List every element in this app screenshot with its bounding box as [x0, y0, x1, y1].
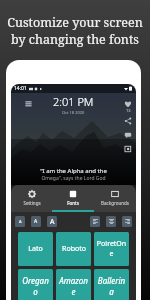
staticText: Omega", says the Lord God — [41, 175, 106, 182]
button[interactable]: Align center — [106, 216, 116, 227]
button[interactable]: Fonts — [52, 185, 94, 212]
staticText: Fonts — [67, 200, 79, 206]
staticText: Settings — [23, 200, 41, 206]
staticText: Oct 18 2020 — [62, 110, 85, 115]
staticText: Lato — [28, 244, 43, 254]
staticText: A — [19, 219, 22, 224]
staticText: Ballerina — [96, 275, 127, 297]
staticText: 2:01 PM — [53, 94, 94, 109]
button[interactable]: Comment — [124, 131, 132, 139]
button[interactable]: Align right — [122, 216, 132, 227]
button[interactable]: Ballerina — [94, 269, 129, 300]
staticText: Oregano — [20, 275, 51, 297]
button[interactable]: Align left — [90, 216, 100, 227]
button[interactable]: Like — [124, 100, 132, 108]
staticText: 13 — [126, 108, 131, 113]
staticText: Backgrounds — [101, 200, 129, 206]
staticText: PoiretOne — [96, 239, 127, 259]
button[interactable]: Share — [124, 117, 132, 125]
staticText: Customize your screen — [7, 14, 143, 31]
button[interactable]: Font size 4 — [15, 216, 25, 227]
staticText: 14:01 — [14, 85, 27, 92]
button[interactable]: PoiretOne — [94, 232, 129, 266]
staticText: Roboto — [62, 244, 86, 254]
button[interactable]: Settings — [11, 185, 52, 212]
staticText: by changing the fonts — [11, 31, 139, 48]
staticText: "I am the Alpha and the — [40, 167, 107, 175]
staticText: A — [50, 217, 55, 227]
button[interactable]: Font size 7 — [47, 216, 57, 227]
button[interactable]: Lato — [18, 232, 53, 266]
button[interactable]: Oregano — [18, 269, 53, 300]
button[interactable]: Roboto — [56, 232, 91, 266]
button[interactable]: Menu — [25, 100, 32, 107]
button[interactable]: Font size 5 — [31, 216, 41, 227]
staticText: Amazone — [58, 275, 89, 297]
button[interactable]: Amazone — [56, 269, 91, 300]
button[interactable]: Set wallpaper — [124, 145, 132, 153]
button[interactable]: Backgrounds — [94, 185, 136, 212]
staticText: A — [34, 218, 38, 225]
